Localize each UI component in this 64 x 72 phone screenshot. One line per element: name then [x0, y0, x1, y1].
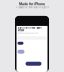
button[interactable] — [17, 50, 24, 54]
staticText: Use the account you trust — [17, 32, 38, 34]
staticText: A beautiful new way to sign in — [15, 6, 48, 9]
staticText: Sign in with your Apple Account — [17, 27, 41, 32]
button[interactable] — [17, 42, 23, 45]
button[interactable] — [25, 62, 41, 66]
staticText: Made for iPhone — [19, 2, 45, 6]
